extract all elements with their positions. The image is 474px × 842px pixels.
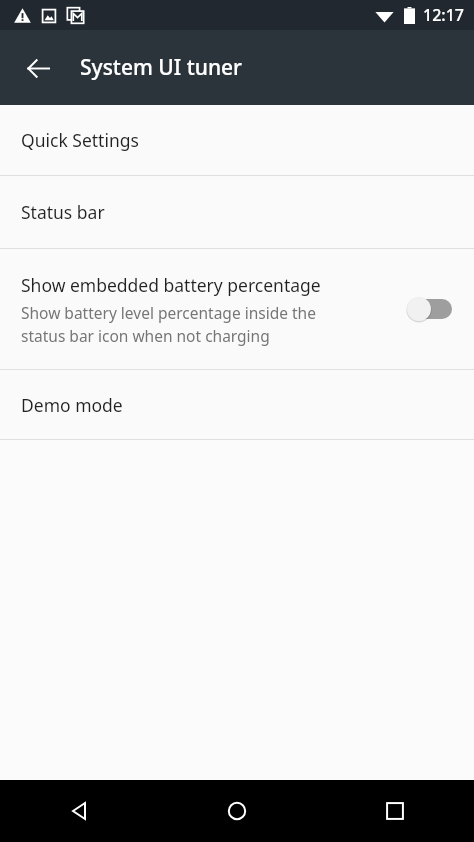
staticText: 12:17 xyxy=(423,4,464,26)
button[interactable]: Back xyxy=(0,780,158,842)
button[interactable]: Quick Settings xyxy=(0,105,474,175)
staticText: Demo mode xyxy=(21,393,123,417)
button[interactable]: Recent apps xyxy=(316,780,474,842)
staticText: status bar icon when not charging xyxy=(21,325,270,346)
button[interactable]: Home xyxy=(158,780,316,842)
staticText: Status bar xyxy=(21,200,105,224)
staticText: Show embedded battery percentage xyxy=(21,273,321,297)
staticText: System UI tuner xyxy=(80,53,242,82)
button[interactable]: Demo mode xyxy=(0,370,474,439)
button[interactable]: Navigate up xyxy=(16,46,60,90)
button[interactable]: Show embedded battery percentage xyxy=(0,249,474,369)
staticText: Quick Settings xyxy=(21,128,139,152)
button[interactable]: Status bar xyxy=(0,176,474,248)
staticText: Show battery level percentage inside the xyxy=(21,302,316,323)
button[interactable]: Show embedded battery percentage toggle xyxy=(406,292,456,326)
